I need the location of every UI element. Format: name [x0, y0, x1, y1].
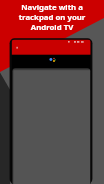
staticText: Navigate with a trackpad on your Android…	[0, 2, 104, 32]
button[interactable]: Trackpad	[0, 0, 104, 184]
